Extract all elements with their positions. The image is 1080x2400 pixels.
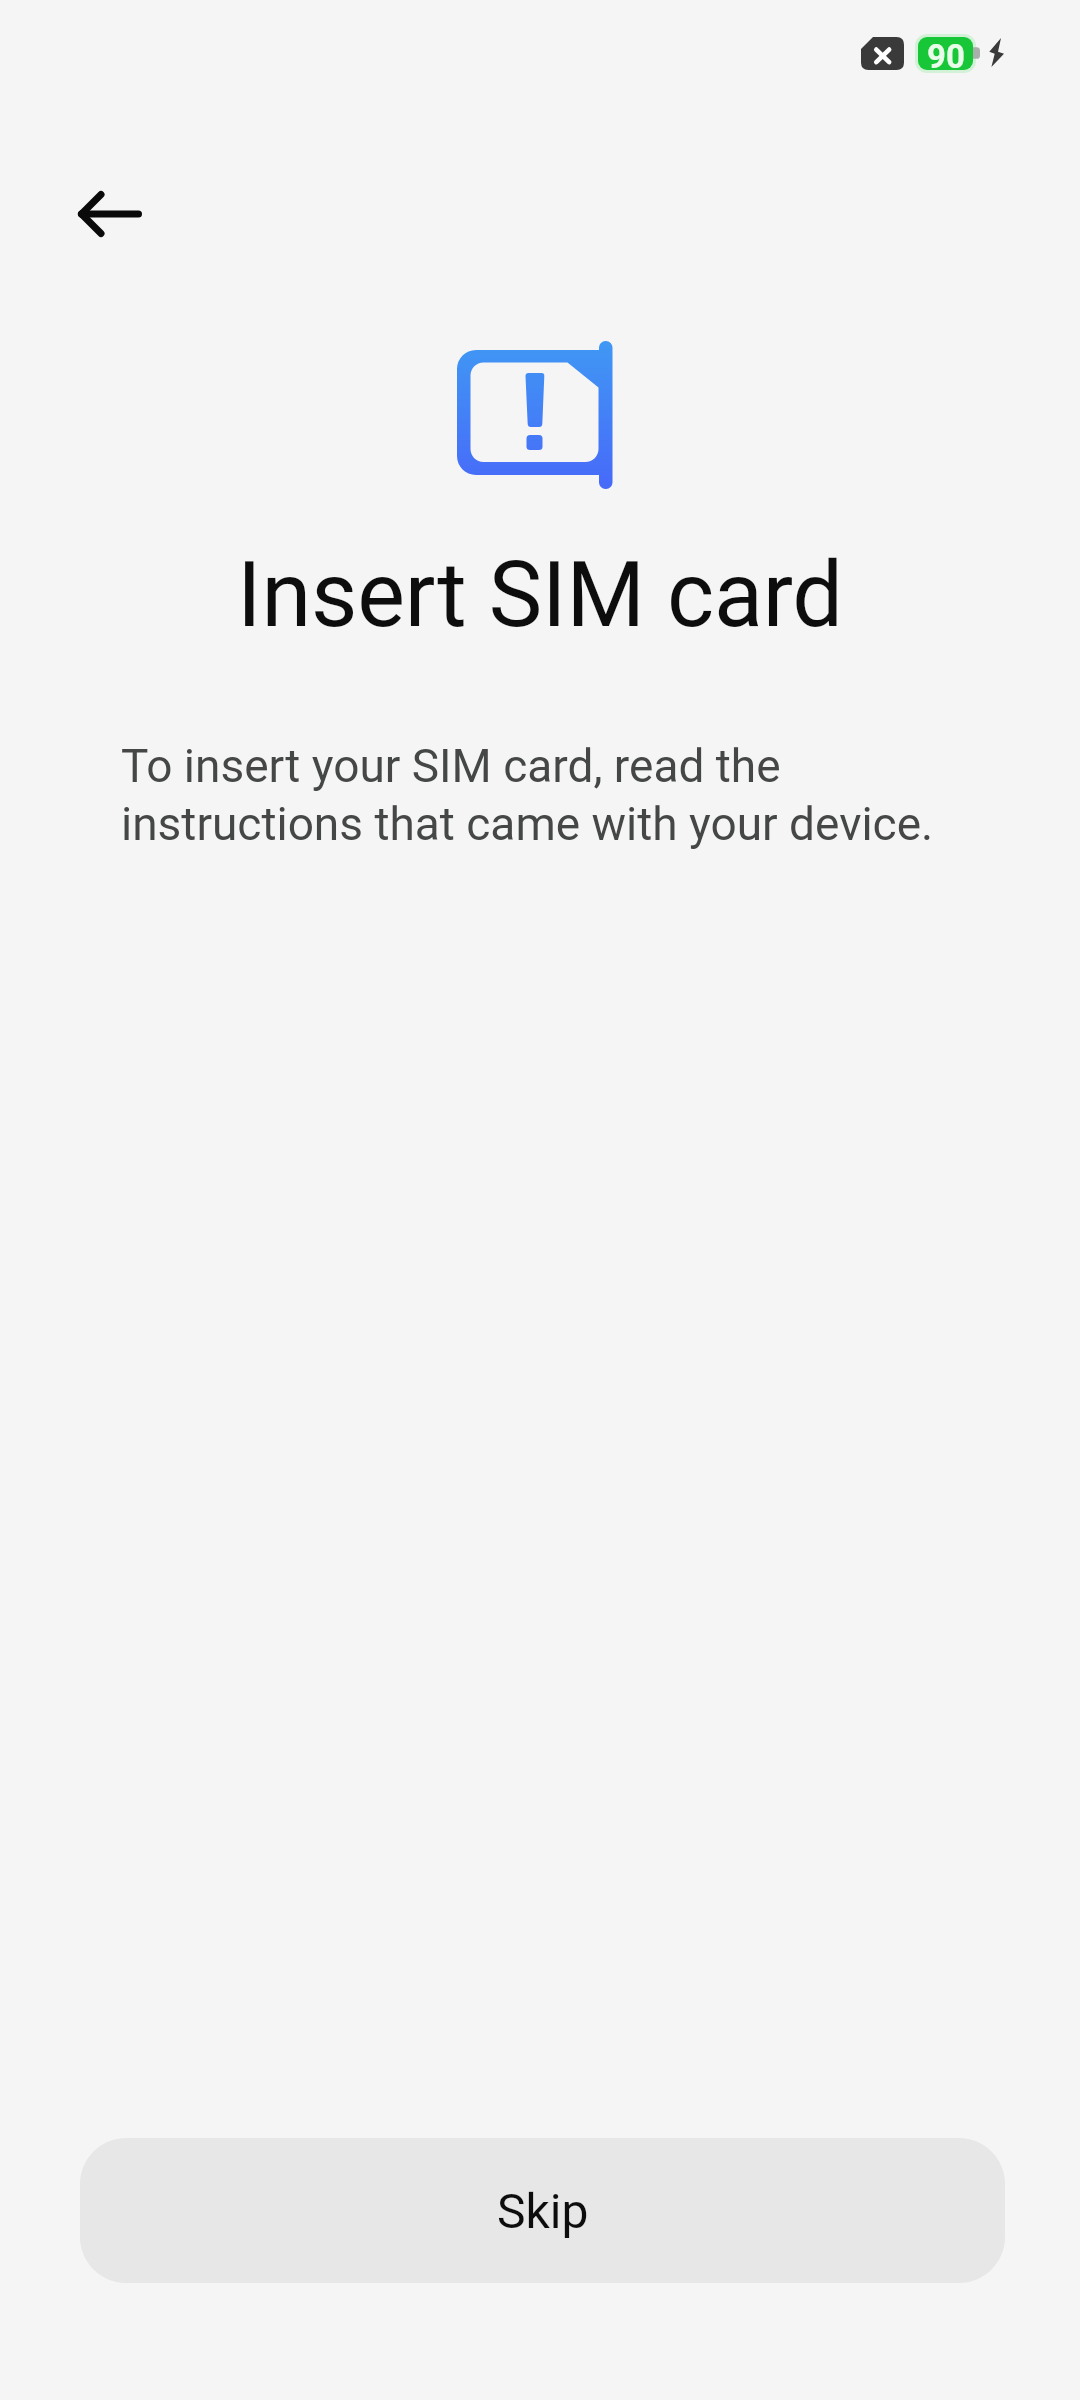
other: Battery 90 percent — [918, 37, 981, 70]
staticText: Insert SIM card — [0, 543, 1080, 648]
other: No SIM card — [861, 37, 904, 70]
staticText: To insert your SIM card, read the instru… — [121, 739, 966, 851]
staticText: 90 — [927, 37, 965, 70]
other: SIM card missing — [455, 339, 615, 491]
staticText: Skip — [497, 2183, 589, 2239]
button[interactable]: Skip — [80, 2138, 1005, 2283]
other: Charging — [989, 38, 1004, 67]
button[interactable]: Navigate back — [58, 162, 162, 266]
